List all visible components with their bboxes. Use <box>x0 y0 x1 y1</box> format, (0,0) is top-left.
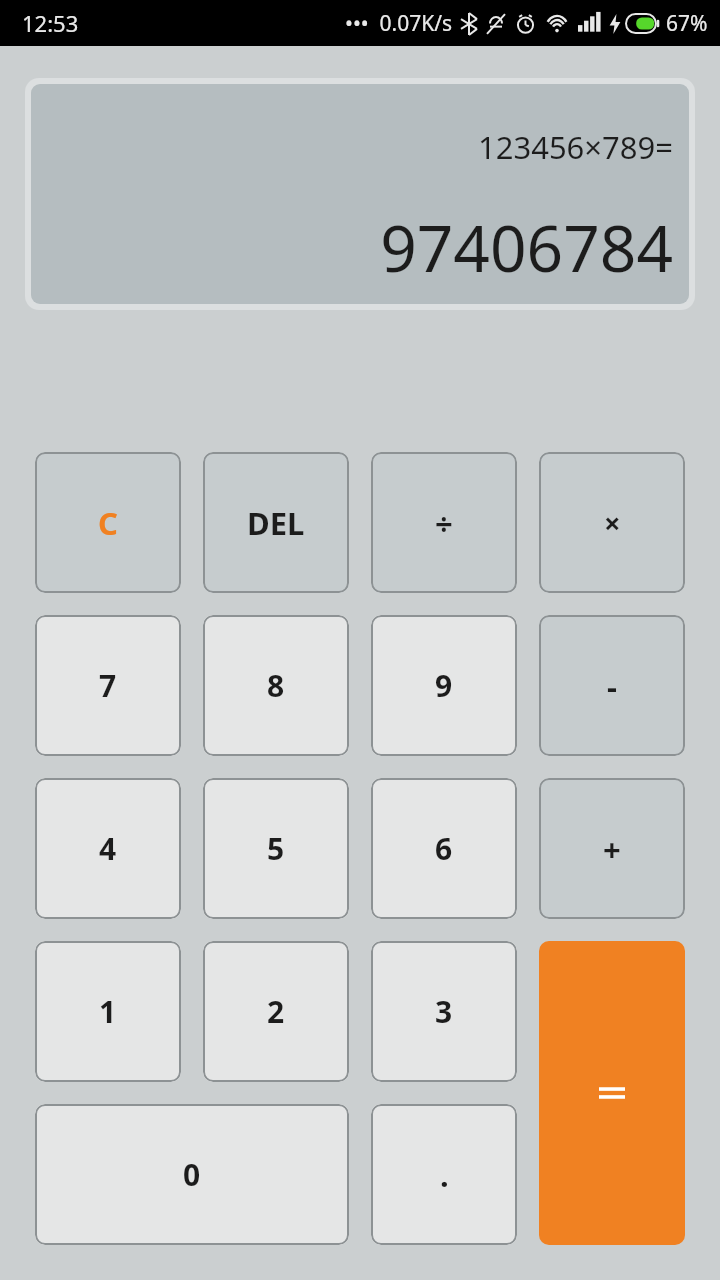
staticText: 6 <box>435 828 453 869</box>
button[interactable]: 3 <box>371 941 517 1082</box>
button[interactable]: 7 <box>35 615 181 756</box>
staticText: 12:53 <box>22 8 79 38</box>
button[interactable]: 5 <box>203 778 349 919</box>
button[interactable]: Plus <box>539 778 685 919</box>
staticText: 7 <box>99 665 117 706</box>
staticText: 5 <box>267 828 285 869</box>
staticText: . <box>440 1154 449 1196</box>
staticText: ••• 0.07K/s <box>345 9 453 38</box>
staticText: 97406784 <box>380 204 673 291</box>
staticText: 9 <box>435 665 453 706</box>
button[interactable]: 8 <box>203 615 349 756</box>
staticText: C <box>98 502 118 544</box>
staticText: × <box>604 503 621 542</box>
staticText: - <box>607 665 617 707</box>
staticText: 4 <box>99 828 117 869</box>
button[interactable]: Divide <box>371 452 517 593</box>
button[interactable]: 2 <box>203 941 349 1082</box>
staticText: 67% <box>666 9 708 38</box>
button[interactable]: 1 <box>35 941 181 1082</box>
button[interactable]: 9 <box>371 615 517 756</box>
staticText: 2 <box>267 991 285 1032</box>
button[interactable]: 0 <box>35 1104 349 1245</box>
staticText: 123456×789= <box>477 126 673 168</box>
button[interactable]: 4 <box>35 778 181 919</box>
button[interactable]: Minus <box>539 615 685 756</box>
staticText: 8 <box>267 665 285 706</box>
staticText: 0 <box>183 1154 201 1195</box>
staticText: 1 <box>99 991 117 1032</box>
button[interactable]: Multiply <box>539 452 685 593</box>
staticText: 3 <box>435 991 453 1032</box>
button[interactable]: 6 <box>371 778 517 919</box>
button[interactable]: . <box>371 1104 517 1245</box>
button[interactable]: DEL <box>203 452 349 593</box>
button[interactable]: C <box>35 452 181 593</box>
button[interactable]: 123456×789= <box>31 84 689 304</box>
staticText: + <box>603 828 621 870</box>
staticText: ÷ <box>435 502 453 544</box>
button[interactable]: Equals <box>539 941 685 1245</box>
staticText: DEL <box>247 502 305 544</box>
